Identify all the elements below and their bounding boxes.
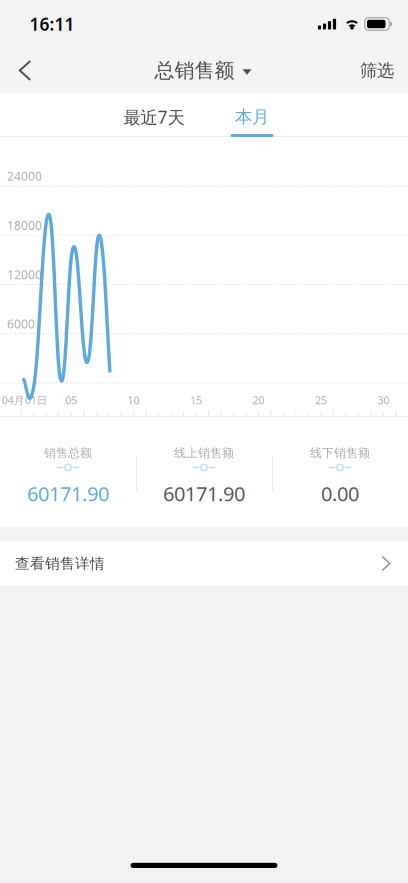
staticText: 24000 [7,168,42,184]
staticText: 05 [65,393,77,407]
staticText: 20 [252,393,264,407]
staticText: 16:11 [29,12,74,35]
button[interactable]: Back [1,47,49,94]
button[interactable]: 查看销售详情 [0,541,408,586]
button[interactable]: 筛选 [346,47,408,94]
staticText: 总销售额 [154,58,234,83]
staticText: 6000 [7,316,35,332]
staticText: 15 [190,393,202,407]
staticText: 筛选 [360,60,394,81]
button[interactable]: 最近7天 [106,94,204,137]
staticText: 60171.90 [163,480,245,507]
button[interactable]: 总销售额 [144,47,261,94]
staticText: 10 [128,393,140,407]
staticText: 线下销售额 [310,446,370,460]
staticText: 最近7天 [123,105,184,128]
staticText: 线上销售额 [174,446,234,460]
staticText: 04月01日 [2,393,48,407]
staticText: 18000 [7,217,42,233]
button[interactable]: 本月 [204,94,302,137]
staticText: 查看销售详情 [15,554,105,572]
staticText: 60171.90 [27,480,109,507]
staticText: 25 [315,393,327,407]
staticText: 30 [377,393,389,407]
staticText: 0.00 [321,480,359,507]
staticText: 12000 [7,266,42,282]
staticText: 销售总额 [44,446,92,460]
staticText: 本月 [235,106,269,128]
